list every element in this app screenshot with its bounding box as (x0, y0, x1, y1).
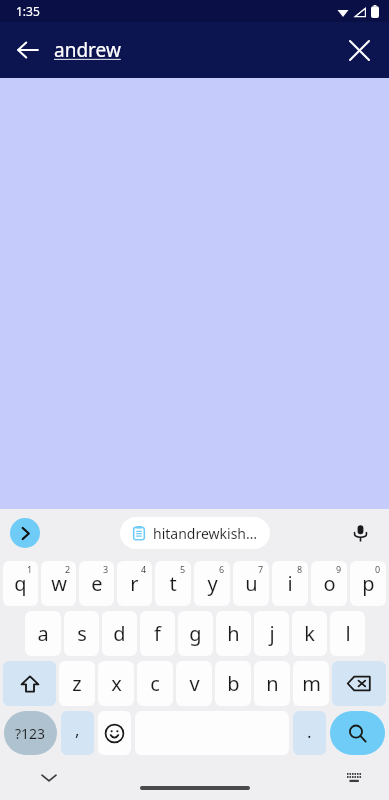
button[interactable]: q (3, 561, 38, 606)
button[interactable]: y (194, 561, 230, 606)
button[interactable]: f (140, 611, 175, 656)
staticText: , (75, 718, 80, 741)
button[interactable]: z (59, 661, 95, 706)
staticText: y (207, 570, 218, 597)
staticText: 1:35 (16, 3, 40, 19)
button[interactable]: hitandrewkish… (120, 517, 270, 549)
staticText: k (304, 620, 315, 647)
button[interactable]: a (25, 611, 61, 656)
button[interactable]: e (79, 561, 114, 606)
staticText: 3 (103, 563, 109, 575)
staticText: ?123 (15, 724, 46, 743)
button[interactable]: Hide keyboard (32, 761, 66, 795)
staticText: . (307, 720, 312, 743)
staticText: 7 (258, 563, 264, 575)
button[interactable]: ?123 (4, 711, 57, 755)
staticText: m (302, 670, 321, 697)
staticText: 9 (336, 563, 342, 575)
staticText: r (130, 570, 139, 597)
button[interactable]: b (215, 661, 251, 706)
staticText: c (150, 670, 160, 697)
button[interactable]: i (272, 561, 308, 606)
staticText: u (245, 570, 258, 597)
button[interactable]: m (293, 661, 329, 706)
staticText: h (227, 620, 240, 647)
staticText: f (154, 620, 161, 647)
staticText: g (189, 620, 202, 647)
button[interactable]: s (64, 611, 99, 656)
button[interactable]: Backspace (332, 661, 386, 706)
staticText: t (169, 570, 177, 597)
staticText: 1 (27, 563, 33, 575)
button[interactable]: r (117, 561, 152, 606)
staticText: b (227, 670, 240, 697)
button[interactable]: Voice input (343, 516, 377, 550)
staticText: p (362, 570, 375, 597)
button[interactable]: x (98, 661, 134, 706)
button[interactable]: andrew (54, 22, 121, 78)
staticText: a (37, 620, 49, 647)
staticText: 6 (219, 563, 225, 575)
button[interactable]: Expand suggestions (10, 518, 40, 548)
button[interactable]: t (155, 561, 191, 606)
button[interactable]: Shift (3, 661, 56, 706)
staticText: 5 (180, 563, 186, 575)
button[interactable]: Clear (337, 28, 381, 72)
button[interactable]: l (330, 611, 365, 656)
staticText: n (266, 670, 279, 697)
staticText: 4 (141, 563, 147, 575)
staticText: 0 (375, 563, 381, 575)
staticText: i (287, 570, 293, 597)
button[interactable]: Back (6, 28, 50, 72)
staticText: x (111, 670, 122, 697)
staticText: s (77, 620, 87, 647)
button[interactable]: p (350, 561, 386, 606)
button[interactable]: h (216, 611, 251, 656)
button[interactable]: j (254, 611, 289, 656)
button[interactable]: k (292, 611, 327, 656)
button[interactable]: c (137, 661, 173, 706)
button[interactable]: Emoji (98, 711, 131, 755)
button[interactable]: , (61, 711, 94, 755)
staticText: e (91, 570, 103, 597)
button[interactable]: n (254, 661, 290, 706)
button[interactable]: v (176, 661, 212, 706)
staticText: v (189, 670, 200, 697)
staticText: q (14, 570, 27, 597)
staticText: j (269, 620, 275, 647)
button[interactable]: d (102, 611, 137, 656)
staticText: l (345, 620, 351, 647)
staticText: z (72, 670, 82, 697)
staticText: d (113, 620, 126, 647)
staticText: 8 (297, 563, 303, 575)
button[interactable]: . (293, 711, 326, 755)
staticText: w (51, 570, 67, 597)
button[interactable]: Switch keyboard (339, 763, 369, 793)
button[interactable]: o (311, 561, 347, 606)
staticText: o (323, 570, 336, 597)
button[interactable]: w (41, 561, 76, 606)
staticText: andrew (54, 37, 121, 63)
staticText: hitandrewkish… (153, 524, 258, 543)
button[interactable]: Search (330, 711, 385, 755)
staticText: 2 (65, 563, 71, 575)
button[interactable]: u (233, 561, 269, 606)
button[interactable]: g (178, 611, 213, 656)
